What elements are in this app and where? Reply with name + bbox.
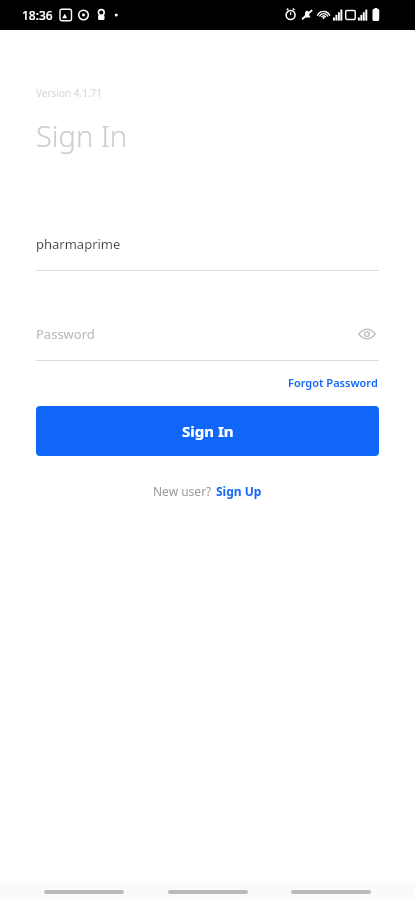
button[interactable]: Forgot Password	[286, 372, 380, 393]
staticText: New user?	[153, 483, 215, 499]
staticText: Forgot Password	[288, 375, 378, 390]
staticText: Sign In	[182, 421, 234, 441]
staticText: Sign In	[36, 116, 128, 155]
staticText: pharmaprime	[36, 235, 379, 253]
button[interactable]: Navigation button	[44, 883, 124, 900]
button[interactable]: Navigation button	[168, 883, 248, 900]
button[interactable]: Sign In	[36, 406, 379, 456]
staticText: Sign Up	[216, 483, 262, 499]
button[interactable]: Show password	[355, 322, 379, 346]
staticText: 18:36	[22, 7, 53, 23]
staticText: Version 4.1.71	[36, 86, 103, 100]
button[interactable]: Sign Up	[215, 480, 263, 502]
staticText: Password	[36, 325, 355, 343]
button[interactable]: Navigation button	[291, 883, 371, 900]
